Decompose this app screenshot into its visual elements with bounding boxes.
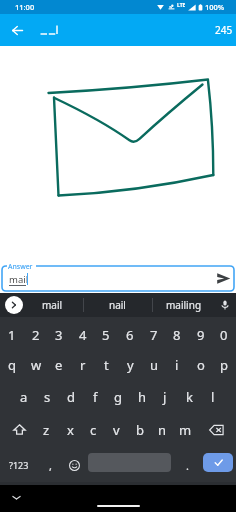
staticText: 9: [197, 326, 205, 344]
button[interactable]: q: [0, 349, 24, 380]
staticText: c: [90, 421, 97, 439]
button[interactable]: e: [47, 349, 71, 380]
button[interactable]: v: [105, 413, 128, 446]
button[interactable]: o: [189, 349, 213, 380]
staticText: n: [158, 421, 167, 439]
button[interactable]: d: [59, 381, 83, 412]
staticText: 6: [126, 326, 134, 344]
staticText: s: [44, 388, 51, 406]
button[interactable]: t: [94, 349, 118, 380]
staticText: o: [197, 356, 205, 374]
button[interactable]: g: [106, 381, 130, 412]
staticText: mail: [9, 273, 29, 286]
button[interactable]: 1: [0, 319, 24, 350]
button[interactable]: u: [142, 349, 166, 380]
staticText: 2: [32, 326, 40, 344]
button[interactable]: s: [35, 381, 59, 412]
staticText: 8: [173, 326, 181, 344]
button[interactable]: Backspace: [200, 413, 234, 446]
button[interactable]: l: [201, 381, 225, 412]
button[interactable]: .: [176, 448, 198, 482]
staticText: 4: [79, 326, 87, 344]
staticText: t: [104, 356, 109, 374]
staticText: 5: [102, 326, 110, 344]
button[interactable]: b: [128, 413, 151, 446]
button[interactable]: Shift: [2, 413, 36, 446]
staticText: i: [175, 356, 179, 374]
button[interactable]: nail: [89, 293, 145, 317]
button[interactable]: i: [165, 349, 189, 380]
staticText: u: [150, 356, 159, 374]
staticText: Answer: [8, 262, 33, 272]
button[interactable]: 2: [24, 319, 48, 350]
button[interactable]: z: [35, 413, 58, 446]
staticText: 100%: [205, 2, 225, 12]
button[interactable]: 9: [189, 319, 213, 350]
button[interactable]: k: [177, 381, 201, 412]
button[interactable]: Enter: [203, 453, 233, 472]
button[interactable]: 6: [118, 319, 142, 350]
button[interactable]: a: [12, 381, 36, 412]
button[interactable]: 8: [165, 319, 189, 350]
staticText: 0: [220, 326, 228, 344]
staticText: z: [43, 421, 50, 439]
staticText: f: [93, 388, 98, 406]
button[interactable]: h: [130, 381, 154, 412]
staticText: x: [67, 421, 74, 439]
staticText: 11:00: [15, 2, 35, 12]
staticText: 3: [55, 326, 63, 344]
staticText: d: [67, 388, 75, 406]
staticText: j: [163, 388, 167, 406]
staticText: b: [136, 421, 144, 439]
staticText: 1: [8, 326, 16, 344]
button[interactable]: mailing: [156, 293, 212, 317]
button[interactable]: 7: [142, 319, 166, 350]
staticText: y: [127, 356, 134, 374]
staticText: a: [20, 388, 28, 406]
staticText: mailing: [166, 298, 202, 312]
staticText: ?123: [9, 459, 29, 471]
button[interactable]: w: [24, 349, 48, 380]
staticText: p: [220, 356, 228, 374]
button[interactable]: n: [151, 413, 174, 446]
button[interactable]: Send: [213, 268, 233, 288]
button[interactable]: r: [71, 349, 95, 380]
button[interactable]: Back: [0, 14, 32, 46]
staticText: k: [186, 388, 193, 406]
staticText: r: [80, 356, 86, 374]
button[interactable]: y: [118, 349, 142, 380]
staticText: 245: [215, 23, 233, 37]
button[interactable]: More suggestions: [5, 296, 23, 314]
button[interactable]: c: [82, 413, 105, 446]
button[interactable]: ,: [38, 448, 62, 482]
staticText: mail: [42, 298, 63, 312]
button[interactable]: mail: [24, 293, 80, 317]
staticText: v: [113, 421, 120, 439]
staticText: LTE: [177, 2, 186, 9]
button[interactable]: 5: [94, 319, 118, 350]
staticText: g: [114, 388, 122, 406]
staticText: nail: [109, 298, 126, 312]
staticText: .: [186, 458, 189, 473]
button[interactable]: Emoji: [62, 448, 86, 482]
staticText: e: [55, 356, 63, 374]
button[interactable]: 3: [47, 319, 71, 350]
button[interactable]: Voice input: [216, 296, 234, 314]
staticText: 7: [150, 326, 158, 344]
staticText: w: [31, 356, 42, 374]
staticText: ,: [49, 458, 52, 473]
button[interactable]: m: [174, 413, 197, 446]
button[interactable]: 4: [71, 319, 95, 350]
staticText: q: [8, 356, 16, 374]
staticText: m: [179, 421, 192, 439]
button[interactable]: x: [59, 413, 82, 446]
button[interactable]: p: [212, 349, 236, 380]
button[interactable]: Hide keyboard: [8, 489, 24, 505]
staticText: l: [211, 388, 215, 406]
staticText: h: [138, 388, 147, 406]
button[interactable]: ?123: [0, 448, 38, 482]
button[interactable]: j: [153, 381, 177, 412]
button[interactable]: 0: [212, 319, 236, 350]
button[interactable]: f: [83, 381, 107, 412]
